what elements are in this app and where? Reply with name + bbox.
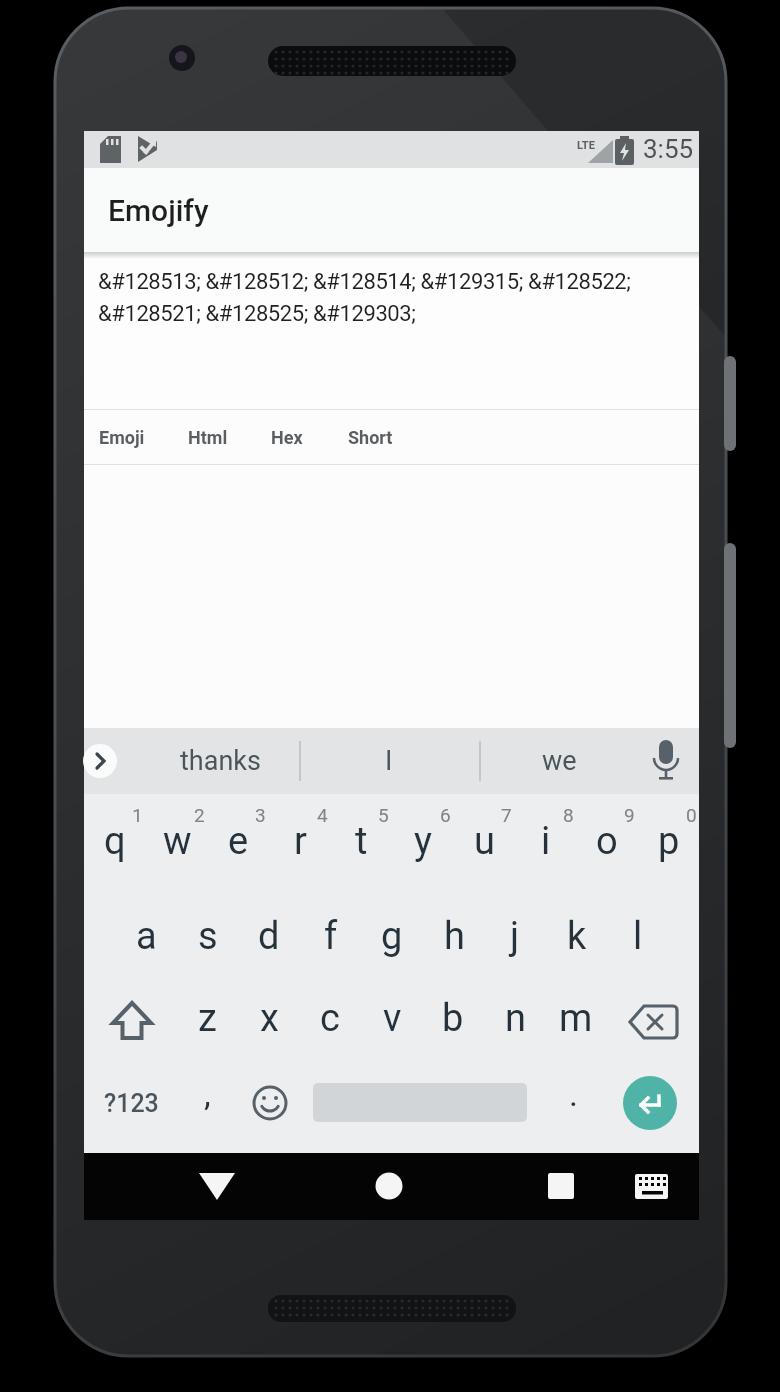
button[interactable]: a <box>116 892 176 980</box>
staticText: 7 <box>501 804 512 826</box>
staticText: 3 <box>255 804 266 826</box>
button[interactable]: e <box>208 797 268 885</box>
staticText: 8 <box>563 804 574 826</box>
button[interactable]: ?123 <box>101 1059 161 1147</box>
staticText: m <box>559 996 593 1041</box>
button[interactable]: y <box>393 797 453 885</box>
button[interactable] <box>625 978 685 1066</box>
button[interactable]: l <box>608 892 668 980</box>
staticText: 9 <box>624 804 635 826</box>
staticText: i <box>541 819 551 864</box>
button[interactable]: j <box>485 892 545 980</box>
button[interactable]: m <box>546 974 606 1062</box>
staticText: we <box>542 745 577 777</box>
button[interactable] <box>623 1076 677 1130</box>
staticText: u <box>474 819 495 864</box>
staticText: t <box>355 819 368 864</box>
staticText: z <box>198 996 217 1041</box>
staticText: v <box>383 996 402 1041</box>
staticText: x <box>260 996 279 1041</box>
button[interactable]: , <box>177 1050 237 1138</box>
staticText: I <box>385 745 393 777</box>
button[interactable]: b <box>423 974 483 1062</box>
button[interactable]: p <box>639 797 699 885</box>
button[interactable]: g <box>362 892 422 980</box>
staticText: 6 <box>440 804 451 826</box>
button[interactable]: f <box>301 892 361 980</box>
staticText: q <box>104 819 126 864</box>
button[interactable]: I <box>301 728 477 794</box>
button[interactable]: t <box>331 797 391 885</box>
staticText: 5 <box>378 804 389 826</box>
button[interactable]: n <box>485 974 545 1062</box>
button[interactable] <box>359 1156 419 1216</box>
staticText: 2 <box>194 804 205 826</box>
button[interactable]: we <box>481 728 637 794</box>
button[interactable] <box>531 1156 591 1216</box>
staticText: k <box>567 914 587 959</box>
staticText: a <box>136 914 157 959</box>
button[interactable]: u <box>454 797 514 885</box>
staticText: g <box>381 914 403 959</box>
staticText: &#128513; &#128512; &#128514; &#129315; … <box>98 269 631 327</box>
staticText: f <box>324 914 338 959</box>
staticText: r <box>294 819 307 864</box>
button[interactable] <box>83 744 117 778</box>
button[interactable]: h <box>424 892 484 980</box>
button[interactable] <box>313 1069 527 1135</box>
button[interactable] <box>622 1156 682 1216</box>
staticText: 0 <box>686 804 697 826</box>
staticText: p <box>658 819 680 864</box>
button[interactable]: x <box>239 974 299 1062</box>
button[interactable]: &#128513; &#128512; &#128514; &#129315; … <box>84 252 699 409</box>
staticText: n <box>505 996 526 1041</box>
staticText: w <box>163 819 192 864</box>
staticText: LTE <box>577 139 595 152</box>
button[interactable]: d <box>239 892 299 980</box>
button[interactable]: v <box>362 974 422 1062</box>
staticText: b <box>442 996 464 1041</box>
staticText: j <box>510 914 520 959</box>
button[interactable]: w <box>147 797 207 885</box>
button[interactable]: o <box>577 797 637 885</box>
staticText: y <box>414 819 432 864</box>
button[interactable]: r <box>270 797 330 885</box>
button[interactable] <box>187 1156 247 1216</box>
button[interactable]: . <box>543 1050 603 1138</box>
staticText: , <box>204 1074 211 1114</box>
staticText: o <box>596 819 618 864</box>
staticText: . <box>569 1074 578 1114</box>
staticText: h <box>444 914 465 959</box>
button[interactable]: Hex <box>271 427 303 448</box>
button[interactable]: Short <box>348 427 393 448</box>
button[interactable] <box>240 1059 300 1147</box>
staticText: 1 <box>132 804 143 826</box>
staticText: ?123 <box>104 1089 159 1118</box>
staticText: 3:55 <box>643 134 694 164</box>
button[interactable]: thanks <box>131 728 309 794</box>
staticText: c <box>320 996 340 1041</box>
staticText: l <box>633 914 643 959</box>
staticText: Emojify <box>108 193 209 228</box>
staticText: 4 <box>317 804 328 826</box>
button[interactable]: Html <box>188 427 228 448</box>
staticText: e <box>228 819 249 864</box>
staticText: s <box>198 914 218 959</box>
button[interactable]: q <box>85 797 145 885</box>
button[interactable]: c <box>300 974 360 1062</box>
button[interactable]: s <box>178 892 238 980</box>
button[interactable] <box>102 978 162 1066</box>
staticText: thanks <box>180 745 261 777</box>
staticText: d <box>258 914 280 959</box>
button[interactable]: i <box>516 797 576 885</box>
button[interactable]: k <box>547 892 607 980</box>
button[interactable]: Emoji <box>99 427 145 448</box>
button[interactable]: z <box>177 974 237 1062</box>
